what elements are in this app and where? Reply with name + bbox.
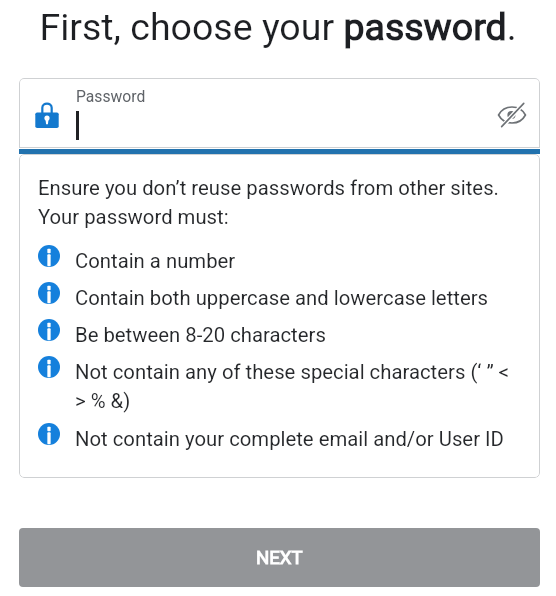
staticText: Not contain your complete email and/or U…: [75, 427, 504, 451]
staticText: Contain a number: [75, 249, 236, 273]
staticText: First, choose your password.: [0, 5, 556, 49]
button[interactable]: Show password: [490, 92, 532, 134]
staticText: NEXT: [256, 547, 303, 569]
staticText: Ensure you don’t reuse passwords from ot…: [38, 176, 499, 229]
staticText: Not contain any of these special charact…: [75, 360, 518, 413]
staticText: Password: [76, 87, 146, 105]
staticText: Contain both uppercase and lowercase let…: [75, 286, 489, 310]
button[interactable]: Password: [19, 78, 540, 148]
button[interactable]: NEXT: [19, 528, 540, 587]
staticText: Be between 8-20 characters: [75, 323, 326, 347]
